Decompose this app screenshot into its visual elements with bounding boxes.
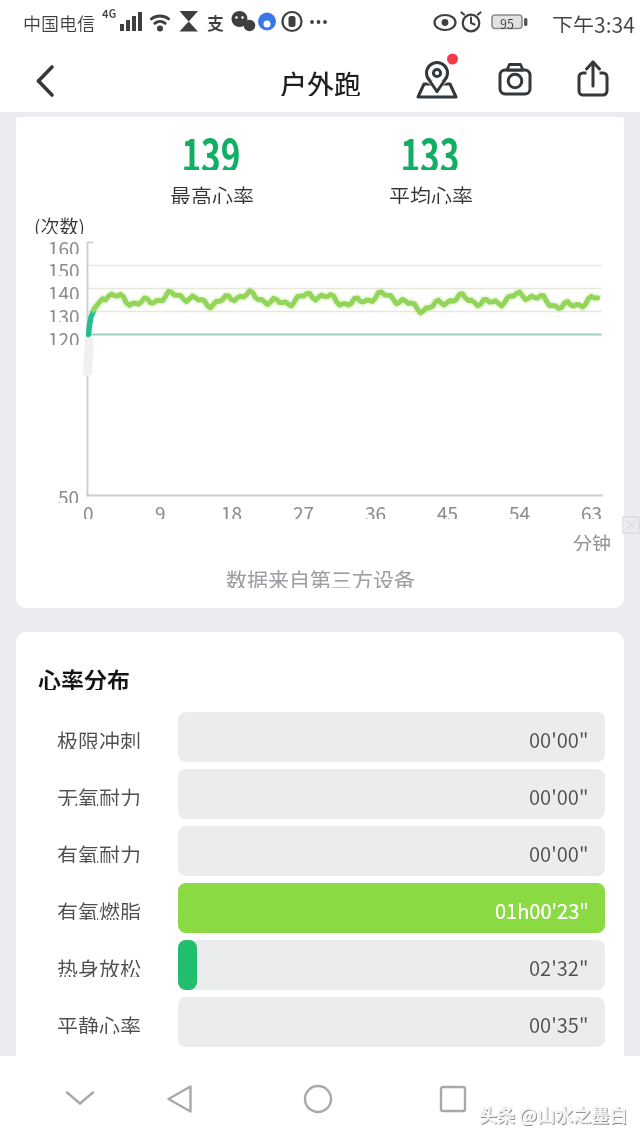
staticText: 数据来自第三方设备 xyxy=(226,564,415,588)
staticText: 支 xyxy=(207,10,224,32)
staticText: 分钟 xyxy=(573,529,612,551)
staticText: 心率分布 xyxy=(38,662,130,690)
staticText: 63 xyxy=(581,499,603,519)
button[interactable]: 户外跑 xyxy=(250,64,390,96)
staticText: 头条 @山水之墨白 xyxy=(479,1101,628,1125)
staticText: 极限冲刺 xyxy=(57,725,141,749)
staticText: 有氧耐力 xyxy=(57,839,141,863)
button[interactable] xyxy=(50,1078,110,1122)
staticText: 02'32" xyxy=(529,953,589,977)
staticText: 01h00'23" xyxy=(495,896,589,920)
staticText: 9 xyxy=(155,499,166,519)
staticText: 139 xyxy=(181,120,241,170)
button[interactable] xyxy=(178,769,605,819)
staticText: 133 xyxy=(400,120,460,170)
staticText: 4G xyxy=(102,5,117,19)
staticText: 95 xyxy=(500,14,514,29)
staticText: 54 xyxy=(509,499,531,519)
button[interactable] xyxy=(178,712,605,762)
staticText: 00'00" xyxy=(529,725,589,749)
button[interactable] xyxy=(178,826,605,876)
staticText: 18 xyxy=(221,499,243,519)
staticText: 27 xyxy=(293,499,315,519)
button[interactable] xyxy=(178,940,605,990)
button[interactable] xyxy=(493,58,539,104)
staticText: 00'00" xyxy=(529,839,589,863)
staticText: 36 xyxy=(365,499,387,519)
button[interactable] xyxy=(178,883,605,933)
staticText: 中国电信 xyxy=(23,10,95,32)
staticText: 无氧耐力 xyxy=(57,782,141,806)
staticText: 00'00" xyxy=(529,782,589,806)
staticText: 130 xyxy=(48,302,80,322)
button[interactable] xyxy=(155,1078,215,1122)
staticText: 45 xyxy=(437,499,459,519)
button[interactable] xyxy=(178,997,605,1047)
button[interactable] xyxy=(24,60,68,104)
staticText: 头条 @山水之墨白 xyxy=(480,1102,629,1126)
staticText: 平静心率 xyxy=(57,1010,141,1034)
staticText: 150 xyxy=(48,256,80,276)
button[interactable] xyxy=(415,58,461,104)
button[interactable] xyxy=(571,58,617,104)
button[interactable] xyxy=(425,1078,485,1122)
staticText: 热身放松 xyxy=(57,953,141,977)
staticText: 00'35" xyxy=(529,1010,589,1034)
staticText: 户外跑 xyxy=(280,64,361,96)
staticText: 160 xyxy=(48,234,80,254)
staticText: 120 xyxy=(48,325,80,345)
staticText: (次数) xyxy=(34,212,85,234)
staticText: 140 xyxy=(48,279,80,299)
staticText: 平均心率 xyxy=(389,180,473,204)
staticText: 50 xyxy=(58,483,80,503)
staticText: 最高心率 xyxy=(170,180,254,204)
button[interactable] xyxy=(290,1078,350,1122)
staticText: 有氧燃脂 xyxy=(57,896,141,920)
staticText: 下午3:34 xyxy=(552,9,635,33)
staticText: 0 xyxy=(83,499,94,519)
